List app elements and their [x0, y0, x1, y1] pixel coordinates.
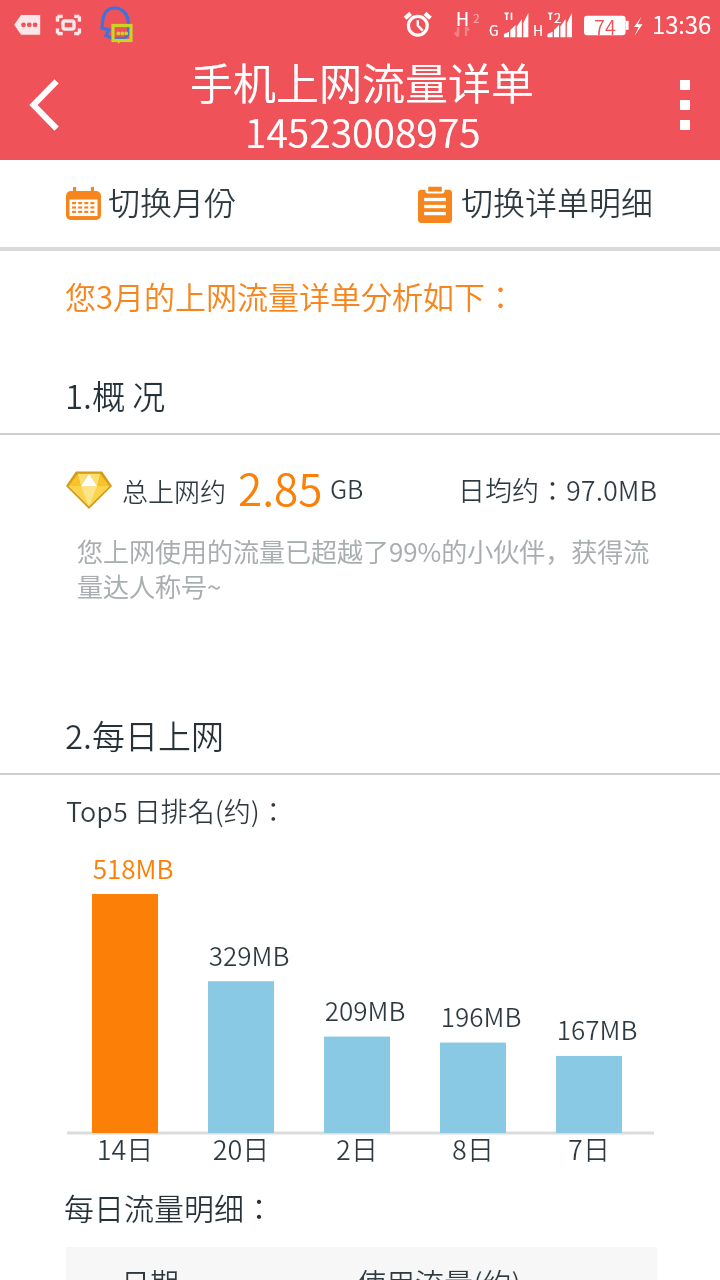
staticText: 2.85: [238, 455, 323, 519]
staticText: 20日: [181, 1129, 301, 1168]
staticText: 手机上网流量详单: [190, 50, 534, 112]
staticText: 196MB: [421, 997, 541, 1035]
staticText: G: [489, 20, 499, 40]
staticText: 总上网约: [122, 472, 227, 510]
staticText: 1.概 况: [65, 371, 166, 419]
staticText: 2.每日上网: [65, 711, 224, 759]
staticText: Top5 日排名(约)：: [66, 791, 287, 830]
staticText: 您上网使用的流量已超越了99%的小伙伴，获得流: [77, 532, 650, 570]
staticText: 使用流量(约): [357, 1261, 522, 1280]
staticText: 2: [554, 8, 562, 27]
staticText: 74: [594, 12, 616, 41]
staticText: H: [456, 5, 469, 31]
staticText: GB: [330, 470, 364, 506]
staticText: 7日: [529, 1129, 649, 1168]
button[interactable]: More options: [645, 64, 720, 144]
staticText: 13:36: [652, 6, 712, 41]
staticText: 14日: [65, 1129, 185, 1168]
staticText: 2日: [297, 1129, 417, 1168]
staticText: H: [533, 20, 544, 40]
staticText: 您3月的上网流量详单分析如下：: [65, 273, 517, 318]
staticText: 日期: [121, 1261, 180, 1280]
button[interactable]: 切换月份: [0, 160, 360, 247]
staticText: 8日: [413, 1129, 533, 1168]
button[interactable]: Back: [0, 60, 88, 148]
staticText: 14523008975: [245, 103, 481, 159]
staticText: 518MB: [73, 849, 193, 887]
staticText: 切换月份: [108, 178, 237, 224]
staticText: 209MB: [305, 991, 425, 1029]
staticText: 日均约：97.0MB: [458, 470, 658, 509]
staticText: 2: [473, 9, 480, 26]
staticText: 329MB: [189, 936, 309, 974]
staticText: 每日流量明细：: [64, 1185, 274, 1228]
staticText: 量达人称号~: [77, 567, 222, 605]
button[interactable]: 切换详单明细: [360, 160, 720, 247]
staticText: 切换详单明细: [461, 178, 654, 224]
staticText: 167MB: [537, 1010, 657, 1048]
